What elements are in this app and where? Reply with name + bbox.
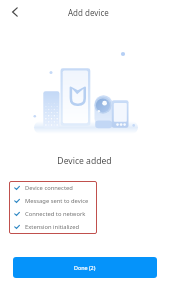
staticText: Device connected <box>25 184 73 192</box>
staticText: Device added <box>0 155 169 167</box>
staticText: Extension initialized <box>25 223 80 231</box>
button[interactable]: Back <box>6 3 24 21</box>
staticText: Connected to network <box>25 210 86 218</box>
staticText: Done (2) <box>74 264 96 271</box>
staticText: Add device <box>68 7 109 18</box>
staticText: Message sent to device <box>25 197 89 205</box>
button[interactable]: Done (2) <box>13 257 157 278</box>
